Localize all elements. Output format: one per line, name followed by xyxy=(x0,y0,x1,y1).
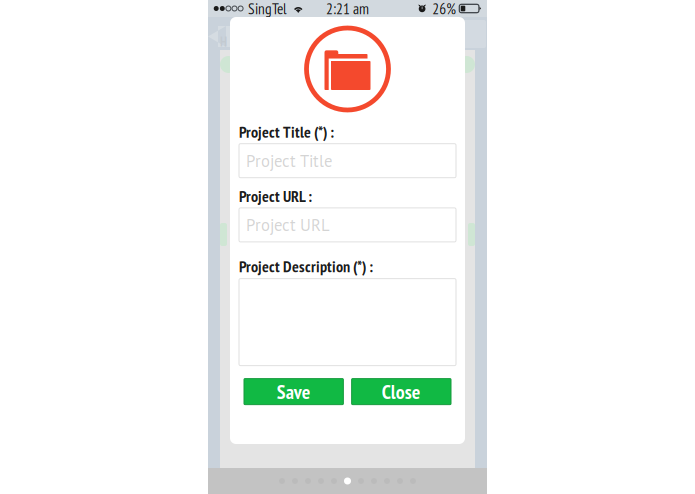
button[interactable]: Save xyxy=(244,379,343,405)
staticText: 26% xyxy=(432,0,456,18)
staticText: Project URL xyxy=(246,214,330,236)
staticText: Project Description (*) : xyxy=(239,256,373,277)
button[interactable]: Close xyxy=(352,379,451,405)
staticText: SingTel xyxy=(248,0,287,18)
staticText: Project Title (*) : xyxy=(239,121,334,142)
staticText: Project Title xyxy=(246,150,332,171)
staticText: H xyxy=(220,33,227,50)
staticText: Close xyxy=(382,379,421,405)
staticText: 2:21 am xyxy=(326,0,369,18)
staticText: Save xyxy=(277,379,311,405)
staticText: Project URL : xyxy=(239,186,312,206)
